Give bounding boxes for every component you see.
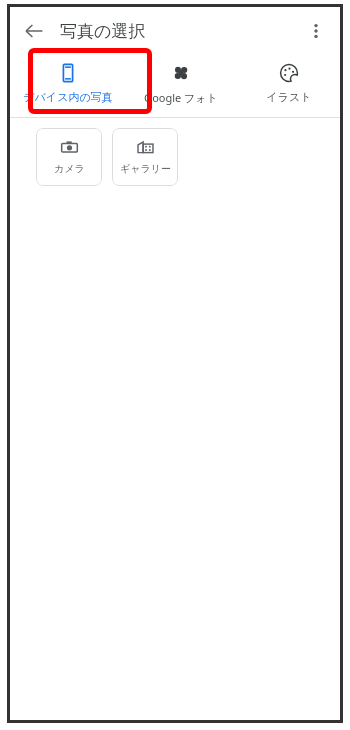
staticText: イラスト xyxy=(266,90,312,104)
button[interactable]: カメラ xyxy=(36,128,102,186)
button[interactable]: イラスト xyxy=(237,55,340,104)
staticText: カメラ xyxy=(54,162,85,175)
button[interactable]: Google フォト xyxy=(125,55,237,105)
staticText: ギャラリー xyxy=(120,162,171,175)
staticText: 写真の選択 xyxy=(60,21,146,42)
button[interactable]: ギャラリー xyxy=(112,128,178,186)
staticText: Google フォト xyxy=(144,90,218,105)
staticText: デバイス内の写真 xyxy=(23,90,113,104)
button[interactable]: その他のオプション xyxy=(298,13,334,49)
button[interactable]: 戻る xyxy=(16,13,52,49)
button[interactable]: デバイス内の写真 xyxy=(10,55,125,104)
